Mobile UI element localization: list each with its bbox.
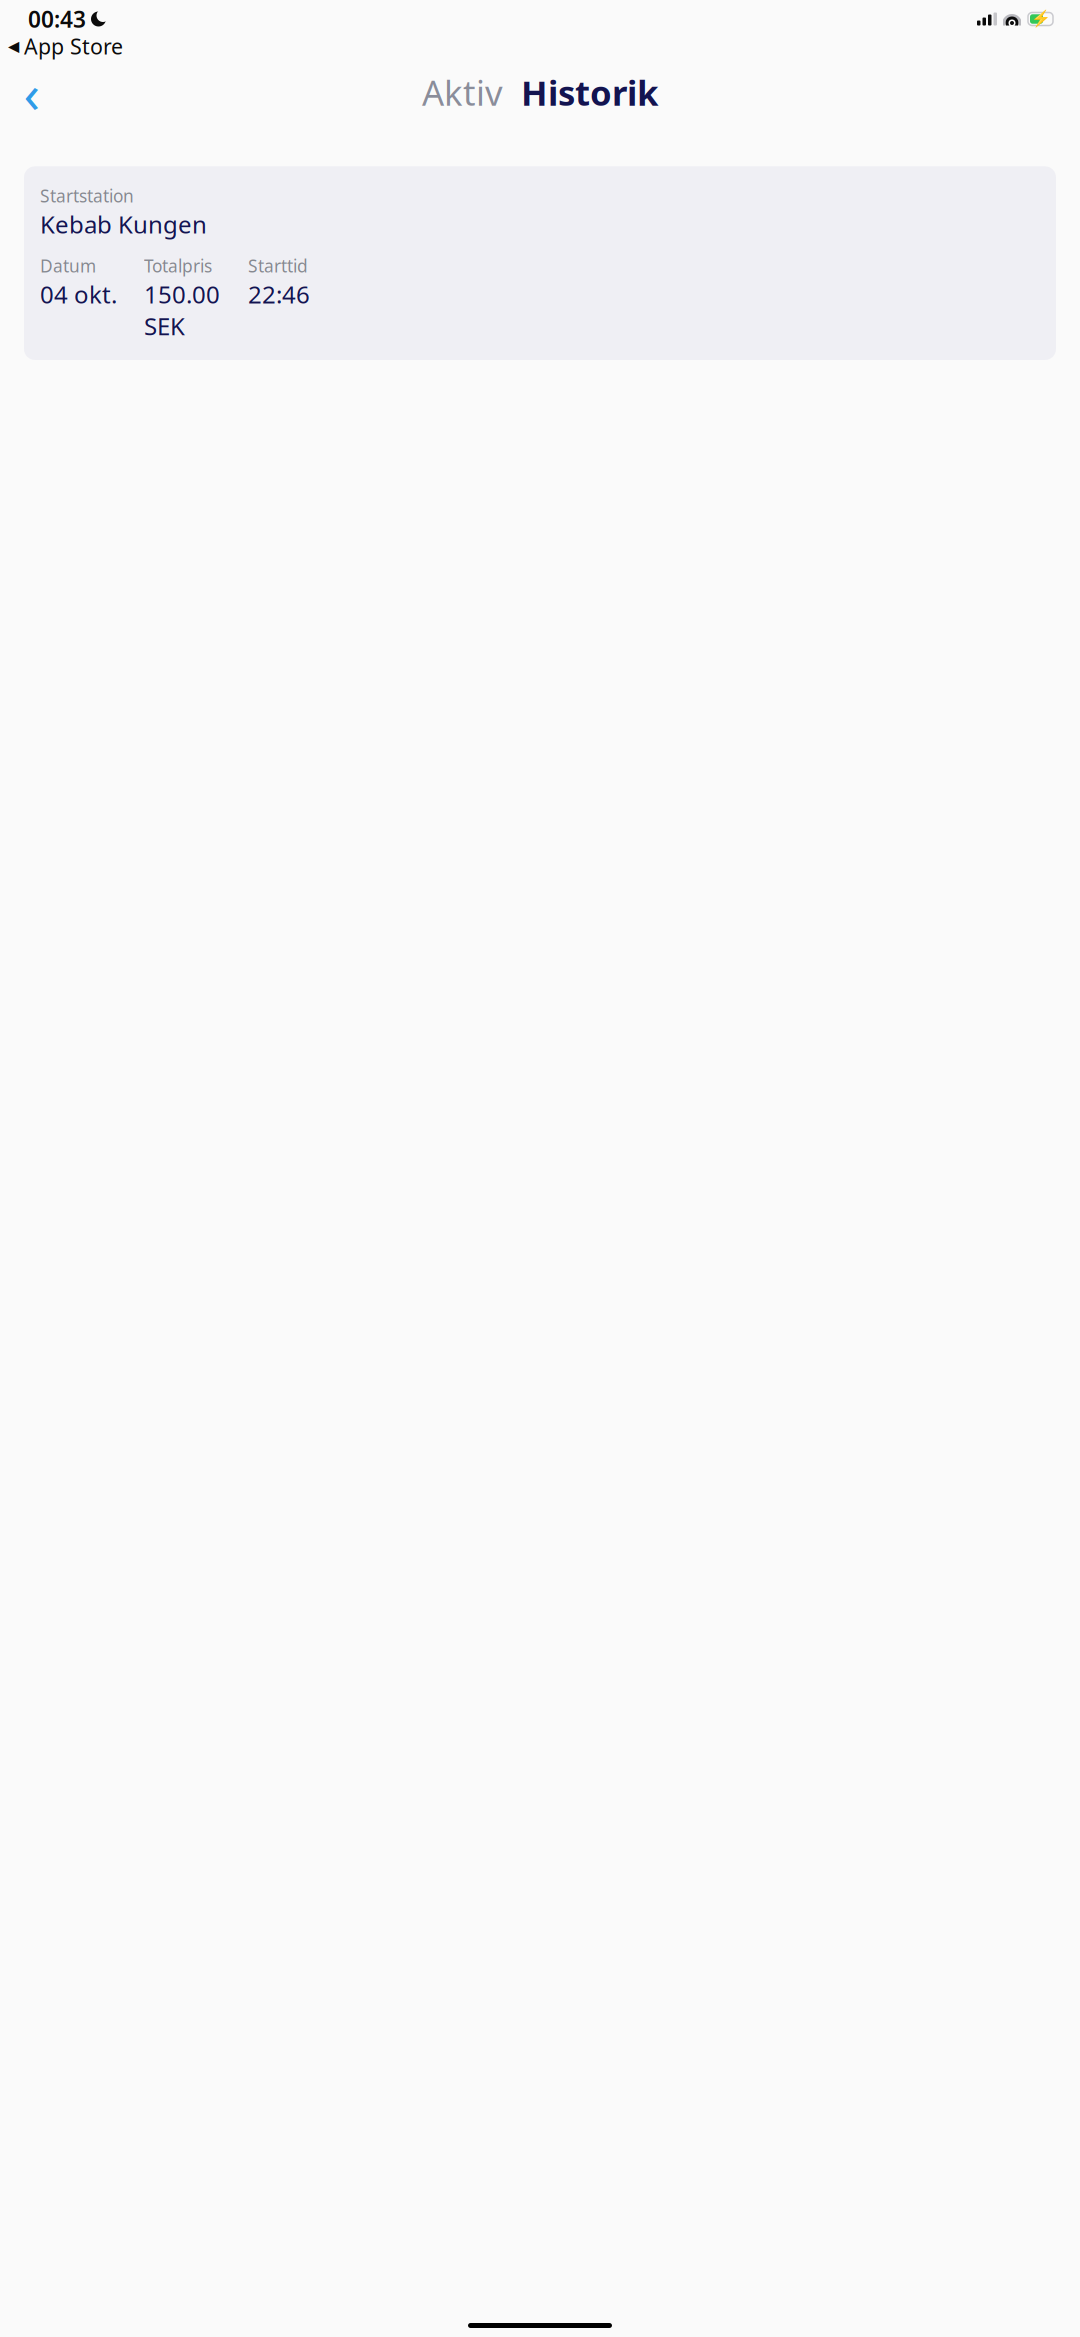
button[interactable]: Back <box>10 70 54 114</box>
staticText: Kebab Kungen <box>40 208 207 240</box>
staticText: Datum <box>40 254 96 277</box>
button[interactable]: Startstation <box>24 166 1056 360</box>
staticText: 04 okt. <box>40 278 117 310</box>
staticText: Aktiv <box>422 69 503 115</box>
staticText: ‹ <box>23 57 40 128</box>
staticText: Historik <box>521 69 658 115</box>
staticText: 00:43 <box>28 4 86 34</box>
staticText: Totalpris <box>144 254 212 277</box>
staticText: Startstation <box>40 184 134 207</box>
button[interactable]: Aktiv <box>422 69 503 115</box>
staticText: ◀ <box>8 38 19 54</box>
button[interactable]: ◀ <box>0 32 123 60</box>
staticText: 22:46 <box>248 278 310 310</box>
button[interactable]: Historik <box>521 69 658 115</box>
staticText: 150.00 SEK <box>144 278 220 342</box>
staticText: ⚡ <box>1030 10 1050 28</box>
staticText: Starttid <box>248 254 308 277</box>
staticText: App Store <box>24 32 123 60</box>
